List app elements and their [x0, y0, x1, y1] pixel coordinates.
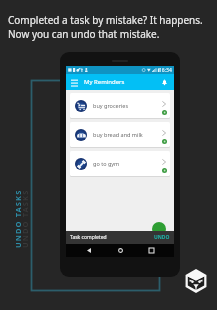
staticText: UNDO TASKS: [20, 189, 30, 248]
staticText: buy groceries: [93, 102, 129, 109]
button[interactable]: Home: [112, 244, 128, 257]
button[interactable]: Recents: [143, 244, 159, 257]
staticText: Now you can undo that mistake.: [8, 27, 160, 41]
staticText: buy bread and milk: [93, 131, 143, 138]
button[interactable]: buy bread and milk: [70, 122, 170, 147]
button[interactable]: App logo: [184, 269, 208, 293]
button[interactable]: Task completed: [66, 231, 174, 244]
staticText: UNDO: [154, 234, 170, 241]
staticText: Completed a task by mistake? It happens.: [8, 13, 203, 27]
button[interactable]: Open navigation menu: [66, 74, 82, 90]
staticText: UNDO TASKS: [13, 189, 23, 248]
staticText: Task completed: [70, 234, 107, 241]
button[interactable]: go to gym: [70, 151, 170, 176]
button[interactable]: buy groceries: [70, 93, 170, 118]
button[interactable]: Back: [81, 244, 97, 257]
staticText: 16:34: [159, 67, 172, 74]
button[interactable]: Notifications: [157, 74, 171, 90]
button[interactable]: Add reminder: [152, 222, 166, 236]
staticText: go to gym: [93, 160, 120, 167]
staticText: My Reminders: [84, 78, 125, 86]
